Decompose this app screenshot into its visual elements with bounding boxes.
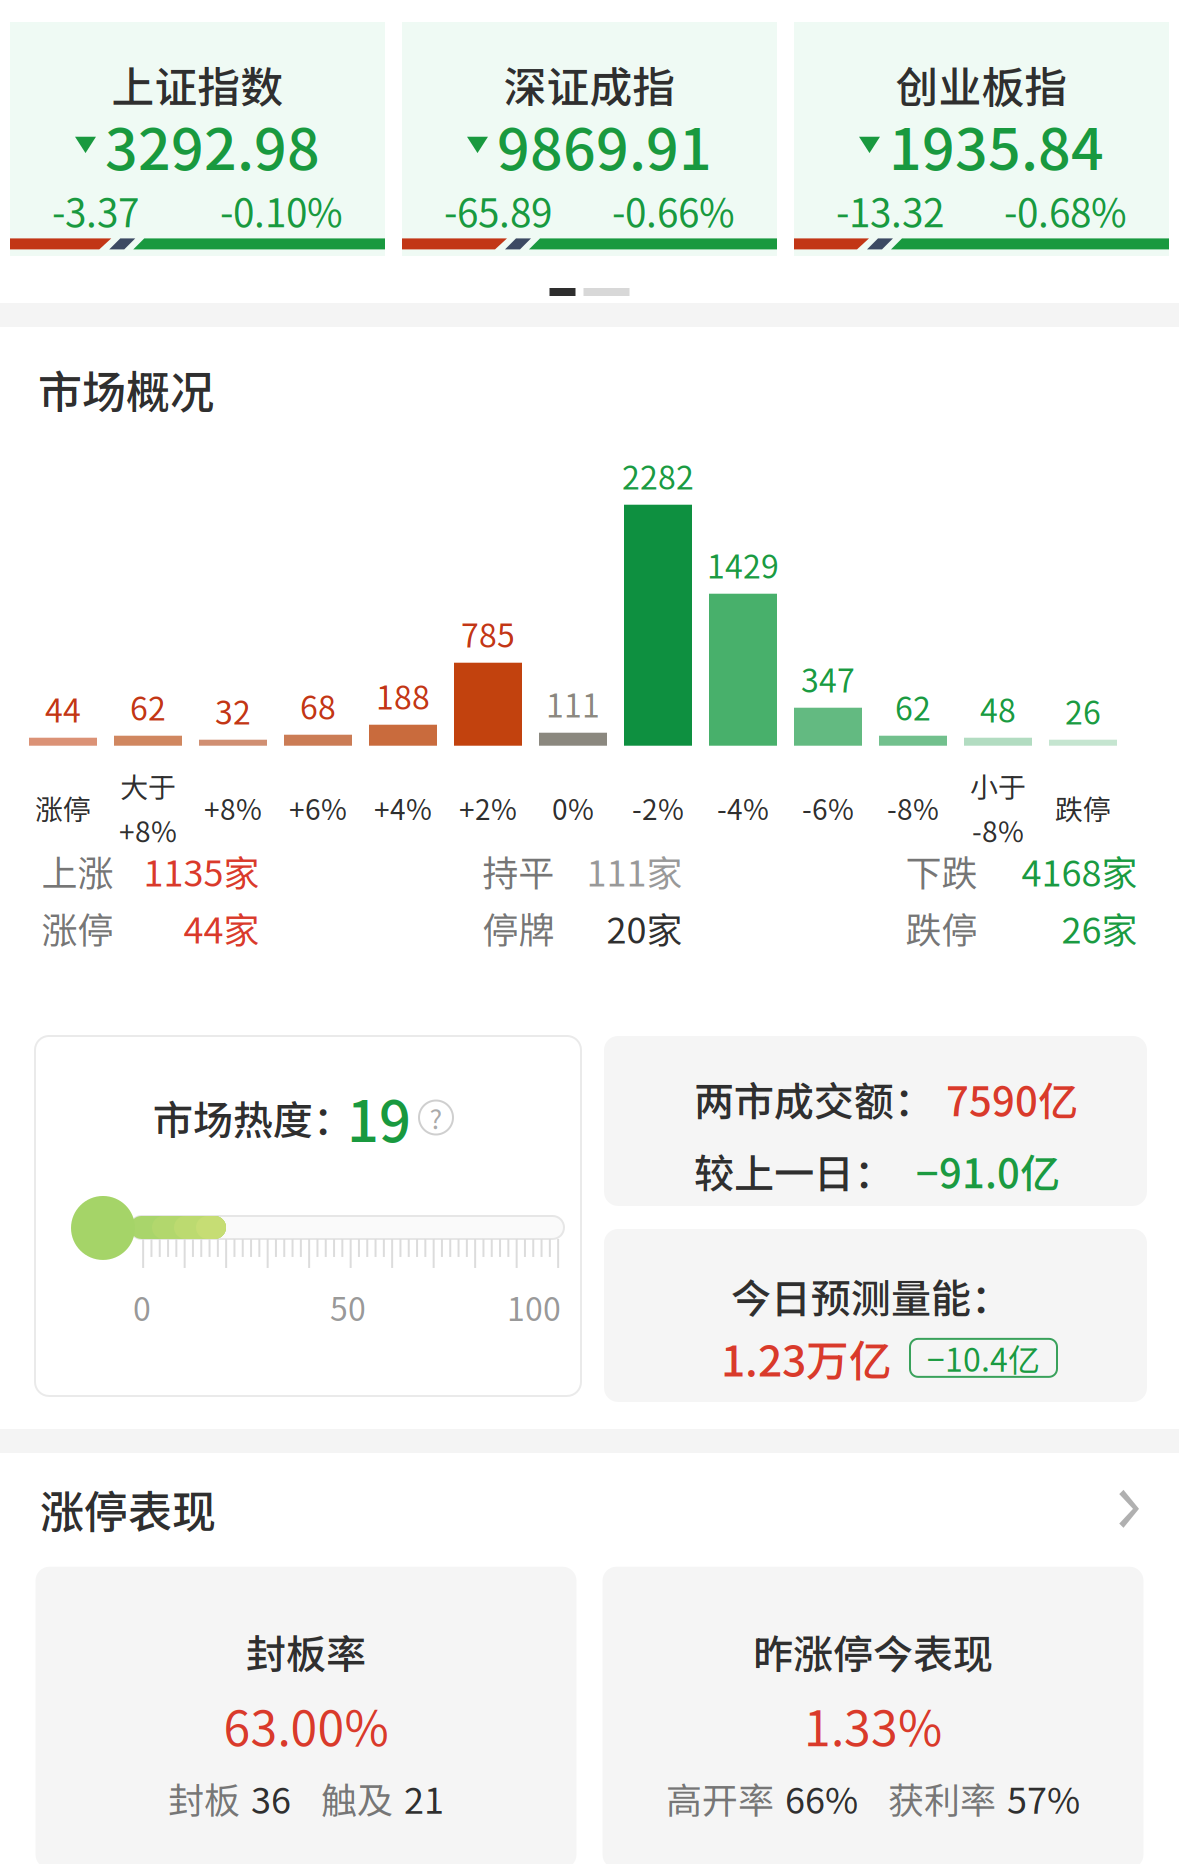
staticText: 1.33% [804,1691,942,1760]
staticText: -8% [887,787,939,828]
staticText: 市场概况 [38,357,214,421]
staticText: 持平 [482,845,554,897]
staticText: 36 [251,1772,291,1824]
staticText: -2% [632,787,684,828]
staticText: 封板 [168,1772,240,1824]
staticText: +8% [204,787,262,828]
staticText: 19 [347,1077,411,1158]
staticText: 创业板指 [895,54,1067,115]
button[interactable]: 深证成指 [402,22,777,256]
staticText: 111家 [586,845,682,897]
staticText: 50 [330,1284,366,1330]
staticText: 高开率 [666,1772,774,1824]
staticText: 小于 [970,765,1026,806]
staticText: 涨停 [35,787,91,828]
staticText: 347 [801,655,855,702]
staticText: 63.00% [223,1691,388,1760]
staticText: 1135家 [143,845,259,897]
staticText: 大于 [120,765,176,806]
staticText: 4168家 [1021,845,1137,897]
staticText: 涨停表现 [40,1477,216,1541]
staticText: 62 [895,683,931,730]
staticText: 26 [1065,687,1101,734]
staticText: 1429 [707,541,779,588]
staticText: 26家 [1061,902,1137,954]
button[interactable]: 涨停表现 [0,1465,1179,1553]
staticText: -8% [972,810,1024,850]
staticText: 44家 [183,902,259,954]
staticText: 111 [546,680,600,727]
staticText: -4% [717,787,769,828]
staticText: 下跌 [905,845,977,897]
staticText: 跌停 [1055,787,1111,828]
staticText: 封板率 [246,1623,366,1681]
staticText: 7590亿 [946,1070,1078,1128]
staticText: 1935.84 [889,103,1104,186]
staticText: 785 [461,610,515,657]
staticText: -3.37 [52,182,139,238]
staticText: 62 [130,683,166,730]
staticText: 跌停 [905,902,977,954]
staticText: 68 [300,682,336,729]
staticText: -13.32 [836,182,944,238]
staticText: 上证指数 [111,54,283,115]
staticText: 触及 [321,1772,393,1824]
staticText: −91.0亿 [916,1142,1060,1200]
staticText: -0.66% [612,182,735,238]
staticText: 1.23万亿 [721,1327,892,1389]
staticText: -6% [802,787,854,828]
staticText: 涨停 [41,902,113,954]
staticText: 57% [1007,1772,1080,1824]
staticText: 9869.91 [497,103,712,186]
staticText: ? [429,1098,442,1137]
button[interactable]: 上证指数 [10,22,385,256]
staticText: 48 [980,685,1016,732]
staticText: +4% [374,787,432,828]
staticText: 0% [552,787,594,828]
staticText: 21 [404,1772,444,1824]
staticText: 获利率 [888,1772,996,1824]
staticText: -65.89 [444,182,552,238]
staticText: 深证成指 [503,54,675,115]
staticText: -0.10% [220,182,343,238]
staticText: 188 [376,672,430,719]
staticText: 20家 [606,902,682,954]
staticText: 66% [785,1772,858,1824]
staticText: 3292.98 [105,103,320,186]
staticText: 2282 [622,452,694,499]
staticText: 0 [133,1284,151,1330]
button[interactable]: 创业板指 [794,22,1169,256]
staticText: 停牌 [482,902,554,954]
staticText: 昨涨停今表现 [753,1623,993,1681]
staticText: +8% [119,810,177,850]
staticText: 44 [45,685,81,732]
staticText: 两市成交额： [694,1070,934,1128]
staticText: +2% [459,787,517,828]
staticText: 市场热度： [153,1089,353,1146]
staticText: 100 [507,1284,561,1330]
staticText: −10.4亿 [927,1335,1040,1381]
staticText: -0.68% [1004,182,1127,238]
staticText: 上涨 [41,845,113,897]
staticText: +6% [289,787,347,828]
staticText: 32 [215,687,251,734]
staticText: 今日预测量能： [731,1267,1011,1325]
staticText: 较上一日： [694,1142,894,1200]
